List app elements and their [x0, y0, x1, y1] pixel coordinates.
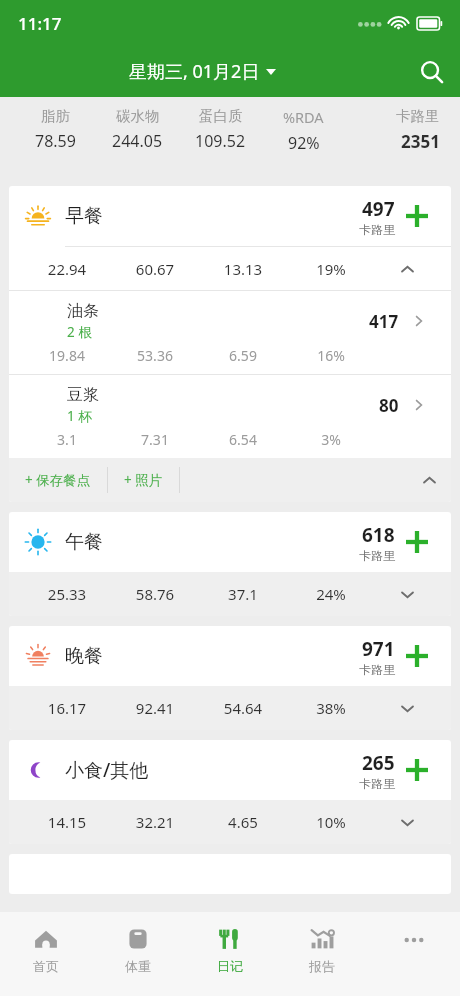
staticText: 6.59 — [199, 346, 287, 365]
staticText: 265 — [362, 750, 395, 776]
staticText: 417 — [369, 310, 399, 333]
button[interactable]: 14.15 — [9, 800, 451, 844]
staticText: 58.76 — [111, 584, 199, 604]
button[interactable]: 首页 — [0, 912, 92, 996]
button[interactable]: 早餐 — [9, 186, 451, 246]
button[interactable]: Add food to 晚餐 — [395, 634, 439, 678]
button[interactable]: 报告 — [276, 912, 368, 996]
staticText: 早餐 — [65, 204, 103, 228]
staticText: 16% — [287, 346, 375, 365]
staticText: 19% — [287, 259, 375, 279]
staticText: 10% — [287, 812, 375, 832]
staticText: 60.67 — [111, 259, 199, 279]
staticText: 体重 — [125, 958, 151, 974]
button[interactable]: 晚餐 — [9, 626, 451, 686]
staticText: 脂肪 — [41, 107, 70, 125]
staticText: 卡路里 — [359, 548, 395, 563]
staticText: 报告 — [309, 958, 335, 974]
staticText: 2351 — [401, 130, 440, 153]
staticText: 1 杯 — [67, 407, 92, 425]
staticText: 971 — [362, 636, 395, 662]
staticText: 16.17 — [23, 698, 111, 718]
button[interactable]: Add food to 午餐 — [395, 520, 439, 564]
staticText: 午餐 — [65, 530, 103, 554]
button[interactable]: 小食/其他 — [9, 740, 451, 800]
staticText: 618 — [362, 522, 395, 548]
button[interactable]: 16.17 — [9, 686, 451, 730]
staticText: 7.31 — [111, 430, 199, 449]
staticText: 497 — [362, 196, 395, 222]
staticText: 38% — [287, 698, 375, 718]
staticText: 4.65 — [199, 812, 287, 832]
button[interactable]: Add food to 早餐 — [395, 194, 439, 238]
staticText: 首页 — [33, 958, 59, 974]
staticText: 53.36 — [111, 346, 199, 365]
button[interactable]: 25.33 — [9, 572, 451, 616]
staticText: 11:17 — [18, 12, 62, 35]
staticText: 37.1 — [199, 584, 287, 604]
staticText: 13.13 — [199, 259, 287, 279]
staticText: 109.52 — [195, 130, 246, 152]
button[interactable]: 体重 — [92, 912, 184, 996]
staticText: %RDA — [283, 107, 324, 127]
button[interactable]: 油条 — [9, 291, 451, 374]
staticText: 油条 — [67, 301, 99, 321]
staticText: 32.21 — [111, 812, 199, 832]
staticText: 蛋白质 — [199, 107, 243, 125]
staticText: 豆浆 — [67, 385, 99, 405]
staticText: 14.15 — [23, 812, 111, 832]
staticText: 3.1 — [23, 430, 111, 449]
button[interactable]: Search — [404, 46, 460, 97]
button[interactable]: Collapse 早餐 — [407, 458, 451, 502]
staticText: 78.59 — [35, 130, 76, 152]
button[interactable]: 日记 — [184, 912, 276, 996]
staticText: 晚餐 — [65, 644, 103, 668]
button[interactable]: 豆浆 — [9, 375, 451, 458]
button[interactable]: Add food to 小食/其他 — [395, 748, 439, 792]
button[interactable]: + 照片 — [108, 463, 179, 497]
staticText: 卡路里 — [359, 776, 395, 791]
staticText: 22.94 — [23, 259, 111, 279]
staticText: 2 根 — [67, 323, 92, 341]
staticText: 卡路里 — [396, 107, 440, 125]
staticText: 小食/其他 — [65, 757, 149, 783]
staticText: + 照片 — [124, 471, 163, 489]
staticText: 92.41 — [111, 698, 199, 718]
staticText: 6.54 — [199, 430, 287, 449]
button[interactable]: 星期三, 01月2日 — [0, 53, 404, 90]
staticText: 星期三, 01月2日 — [129, 59, 260, 84]
button[interactable]: + 保存餐点 — [9, 463, 107, 497]
button[interactable]: 更多 — [368, 912, 460, 996]
staticText: 54.64 — [199, 698, 287, 718]
staticText: 19.84 — [23, 346, 111, 365]
staticText: 碳水物 — [116, 107, 160, 125]
staticText: 92% — [288, 132, 320, 154]
button[interactable]: 22.94 — [9, 247, 451, 290]
staticText: 24% — [287, 584, 375, 604]
staticText: 日记 — [217, 958, 243, 974]
button[interactable]: 午餐 — [9, 512, 451, 572]
staticText: 80 — [379, 394, 399, 417]
staticText: 25.33 — [23, 584, 111, 604]
staticText: 244.05 — [112, 130, 163, 152]
staticText: 3% — [287, 430, 375, 449]
staticText: 卡路里 — [359, 222, 395, 237]
staticText: 卡路里 — [359, 662, 395, 677]
staticText: + 保存餐点 — [25, 471, 91, 489]
